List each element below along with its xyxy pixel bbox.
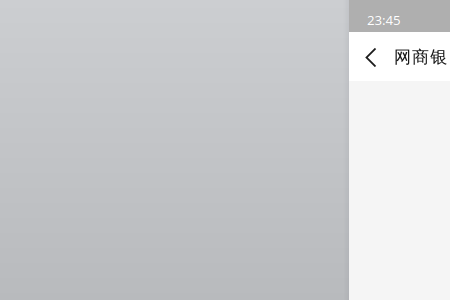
staticText: 网商银行 <box>394 46 450 68</box>
staticText: 23:45 <box>367 11 401 29</box>
button[interactable]: Back <box>349 32 383 81</box>
